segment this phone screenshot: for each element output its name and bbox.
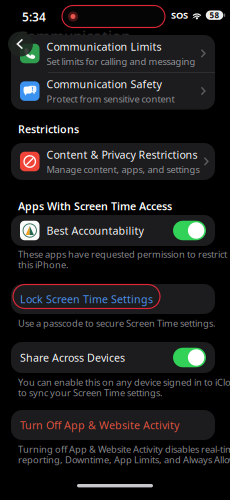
staticText: Apps With Screen Time Access: [18, 199, 172, 213]
staticText: 58: [210, 10, 220, 20]
staticText: this iPhone.: [18, 259, 69, 271]
staticText: 5:34: [22, 9, 46, 25]
staticText: You can enable this on any device signed…: [18, 376, 230, 388]
staticText: to sync your Screen Time settings.: [18, 387, 163, 399]
staticText: Restrictions: [18, 122, 79, 136]
staticText: Manage content, apps, and settings: [46, 163, 199, 175]
button[interactable]: Turn Off App & Website Activity: [11, 410, 215, 440]
staticText: reporting, Downtime, App Limits, and Alw…: [18, 454, 230, 466]
staticText: Lock Screen Time Settings: [20, 292, 153, 306]
button[interactable]: Lock Screen Time Settings: [11, 284, 215, 314]
staticText: Best Accountability: [46, 223, 143, 238]
staticText: These apps have requested permission to …: [18, 248, 227, 260]
staticText: Turn Off App & Website Activity: [20, 418, 179, 432]
button[interactable]: Best Accountability: [11, 215, 215, 246]
staticText: Communication Safety: [46, 77, 161, 91]
button[interactable]: Back: [8, 31, 33, 56]
button[interactable]: Communication Safety: [11, 73, 215, 110]
staticText: Set limits for calling and messaging: [46, 55, 195, 67]
staticText: Protect from sensitive content: [46, 93, 174, 105]
staticText: Content & Privacy Restrictions: [46, 147, 197, 162]
staticText: Turning off App & Website Activity disab…: [18, 443, 230, 455]
staticText: SOS: [171, 9, 188, 21]
staticText: Share Across Devices: [20, 350, 125, 365]
button[interactable]: Content & Privacy Restrictions: [11, 143, 215, 180]
staticText: Use a passcode to secure Screen Time set…: [18, 317, 216, 329]
button[interactable]: Communication Limits: [11, 35, 215, 72]
staticText: Communication: [18, 26, 130, 45]
button[interactable]: Share Across Devices: [11, 342, 215, 373]
staticText: Communication Limits: [46, 39, 161, 54]
